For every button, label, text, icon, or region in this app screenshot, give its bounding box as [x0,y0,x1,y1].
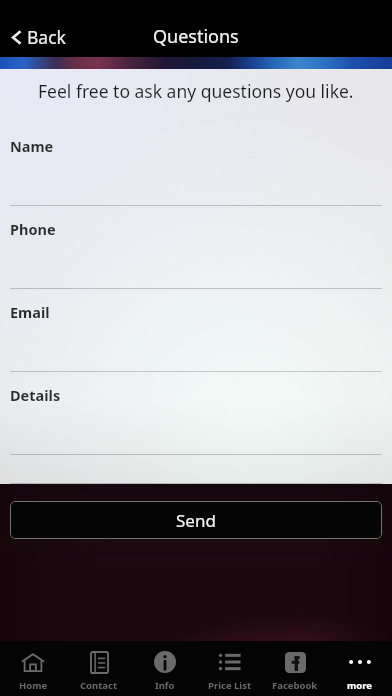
staticText: Facebook [272,679,318,692]
button[interactable]: Name [0,123,392,206]
staticText: Send [176,509,216,532]
button[interactable]: Send [10,501,382,539]
staticText: Back [27,25,66,49]
button[interactable]: more [327,641,392,696]
button[interactable]: Home [0,641,66,696]
button[interactable]: Price List [197,641,262,696]
staticText: more [347,679,372,692]
button[interactable]: Email [0,289,392,372]
button[interactable]: Contact [66,641,132,696]
button[interactable]: Info [132,641,197,696]
staticText: Price List [208,679,252,692]
staticText: Phone [10,219,56,239]
button[interactable]: Back [0,21,78,53]
staticText: Feel free to ask any questions you like. [38,79,354,103]
staticText: Questions [153,24,239,49]
staticText: Info [155,679,175,692]
staticText: Details [10,385,61,405]
button[interactable]: Facebook [262,641,327,696]
button[interactable]: Phone [0,206,392,289]
staticText: Contact [80,679,118,692]
staticText: Name [10,136,54,156]
staticText: Home [19,679,48,692]
button[interactable]: Details [0,372,392,455]
staticText: Email [10,302,50,322]
